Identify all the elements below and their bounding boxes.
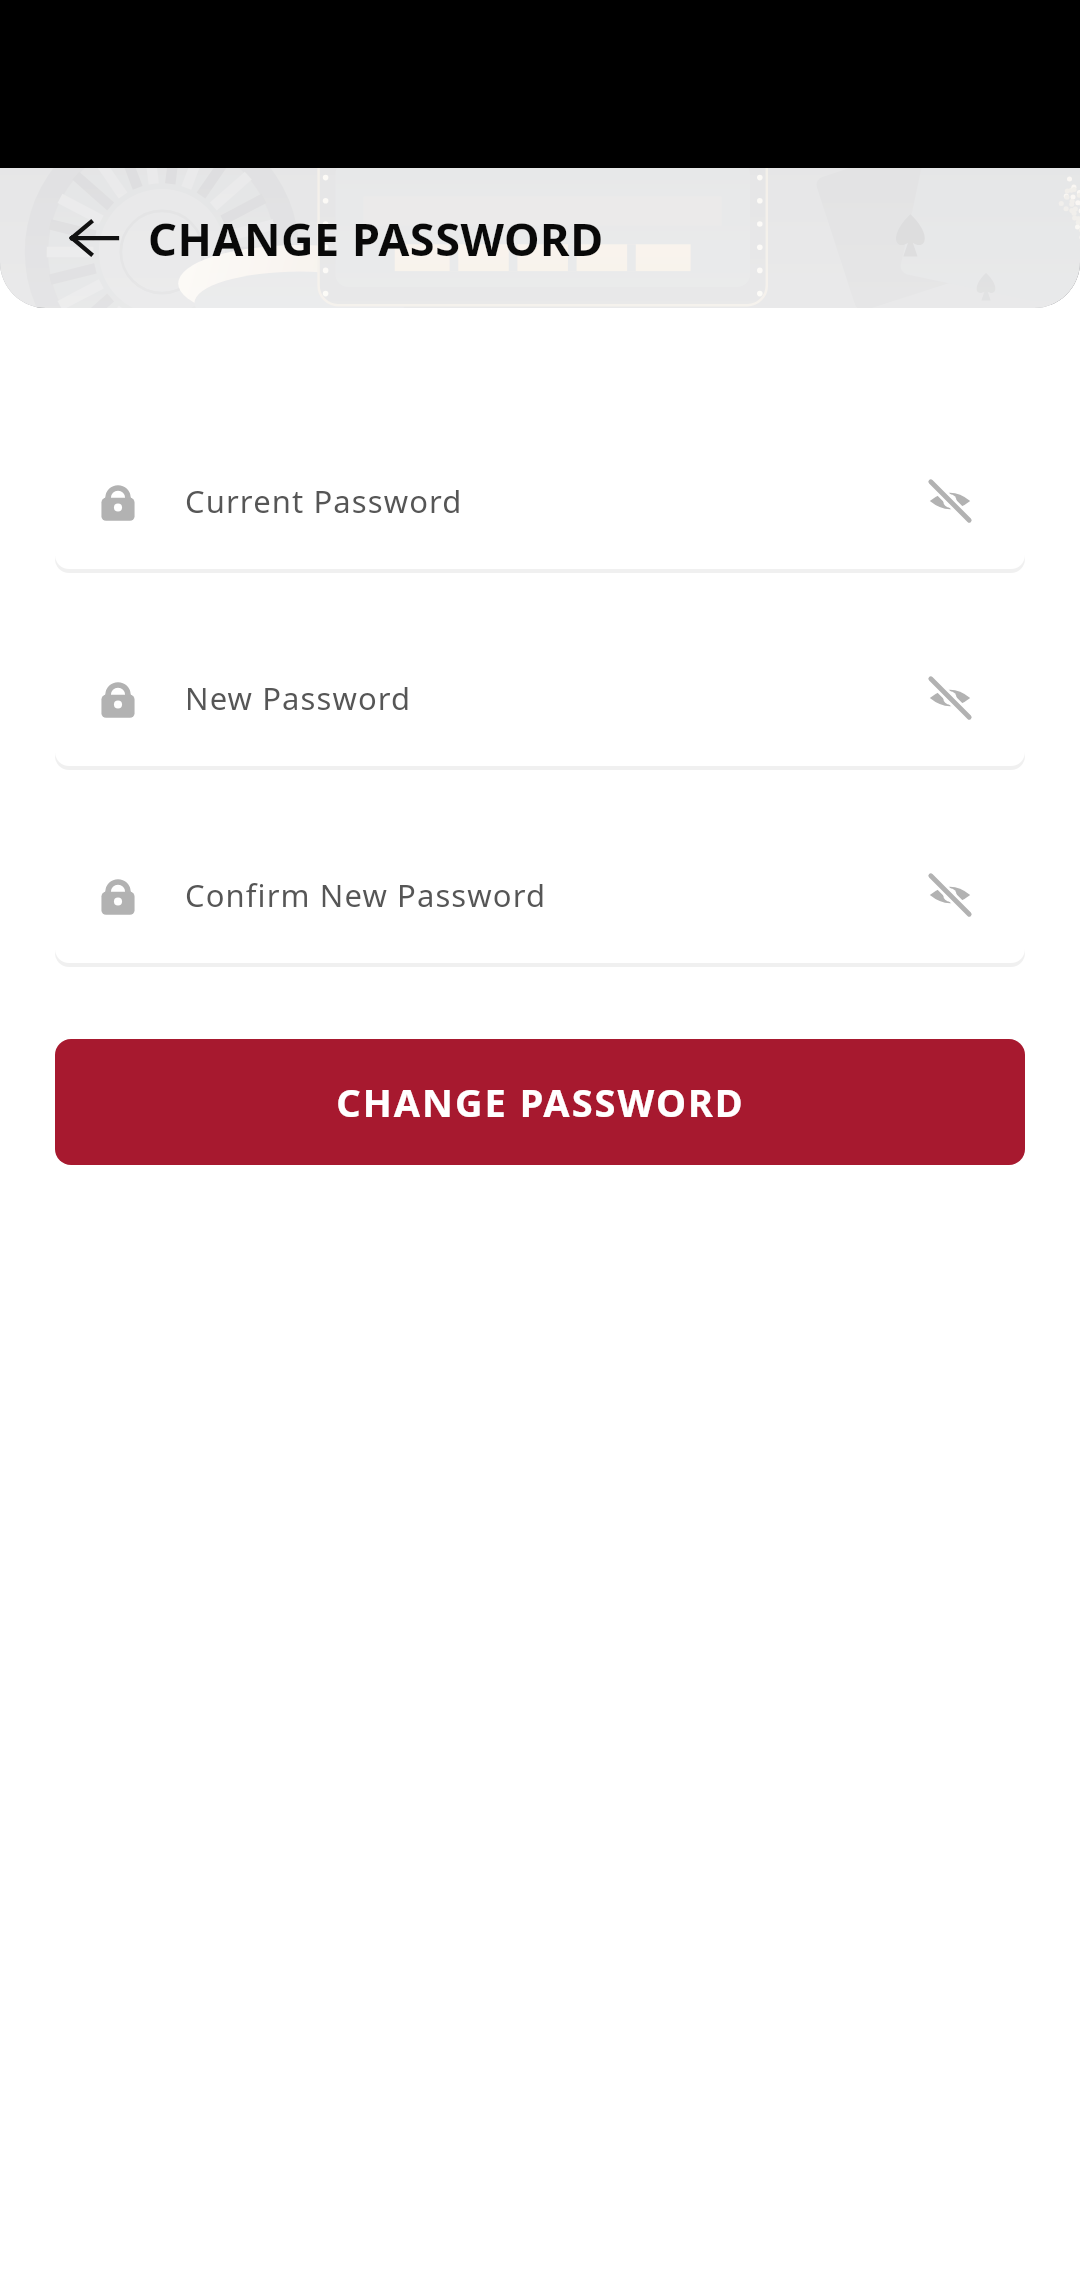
button[interactable]: Show password [915, 860, 985, 930]
staticText: New Password [185, 677, 412, 719]
button[interactable]: New Password [55, 629, 1025, 766]
staticText: Current Password [185, 480, 463, 522]
staticText: CHANGE PASSWORD [148, 208, 604, 269]
button[interactable]: Show password [915, 663, 985, 733]
button[interactable]: Current Password [55, 432, 1025, 569]
button[interactable]: Show password [915, 466, 985, 536]
staticText: Confirm New Password [185, 874, 547, 916]
button[interactable]: CHANGE PASSWORD [55, 1039, 1025, 1165]
button[interactable]: Back [62, 206, 126, 270]
staticText: CHANGE PASSWORD [336, 1076, 745, 1128]
button[interactable]: Confirm New Password [55, 826, 1025, 963]
